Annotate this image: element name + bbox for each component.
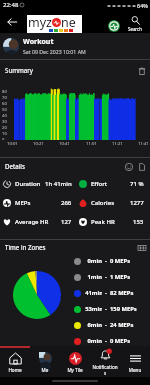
staticText: 64% (137, 2, 148, 9)
staticText: 11:21 (112, 141, 123, 147)
button[interactable]: Delete (135, 64, 148, 77)
staticText: - (105, 257, 107, 265)
staticText: 10:21 (33, 141, 44, 147)
staticText: Home (2, 367, 28, 373)
staticText: 153 (133, 218, 144, 226)
button[interactable]: My Tile (60, 348, 90, 377)
button[interactable]: Menu (120, 348, 150, 377)
button[interactable]: Back (0, 10, 23, 33)
staticText: myz (28, 14, 52, 31)
staticText: 11:01 (86, 141, 97, 147)
button[interactable]: How did you feel (122, 160, 135, 173)
button[interactable]: Search (124, 16, 146, 32)
staticText: Search (128, 26, 142, 32)
staticText: My Tile (62, 367, 88, 373)
button[interactable]: Notifications (90, 348, 120, 377)
staticText: ne (61, 14, 76, 31)
button[interactable]: Export (135, 160, 148, 173)
staticText: 80 (2, 89, 7, 95)
staticText: Peak HR (91, 218, 131, 226)
staticText: 53min (85, 305, 102, 313)
staticText: 10:41 (59, 141, 70, 147)
staticText: 40 (2, 113, 7, 119)
staticText: Sat 09 Dec 2023 10:01 AM (23, 48, 86, 55)
staticText: 22:48 (3, 1, 19, 9)
staticText: 6min (85, 321, 102, 329)
staticText: - (105, 273, 107, 281)
staticText: 71 % (130, 180, 144, 188)
staticText: 0 MEPs (110, 337, 131, 345)
staticText: Duration (15, 180, 43, 188)
button[interactable]: Change chart (135, 241, 148, 254)
staticText: Notifications (92, 364, 118, 376)
staticText: 11:41 (138, 141, 149, 147)
staticText: 266 (61, 199, 72, 207)
staticText: Menu (122, 367, 148, 373)
staticText: 30 (2, 119, 7, 125)
staticText: Calories (91, 199, 128, 207)
staticText: Summary (5, 66, 33, 74)
staticText: 1277 (130, 199, 144, 207)
button[interactable]: Calories (75, 193, 150, 212)
button[interactable]: Peak HR (75, 212, 150, 231)
staticText: - (105, 305, 107, 313)
button[interactable]: Average HR (0, 212, 75, 231)
staticText: 10:01 (7, 141, 18, 147)
staticText: 0 MEPs (110, 257, 131, 265)
staticText: Details (5, 162, 25, 170)
staticText: Average HR (15, 218, 59, 226)
staticText: Time in Zones (5, 243, 46, 251)
staticText: 82 MEPs (110, 289, 134, 297)
staticText: MEPs (15, 199, 59, 207)
staticText: 0min (85, 257, 102, 265)
staticText: 24 MEPs (110, 321, 134, 329)
staticText: 70 (2, 95, 7, 101)
staticText: 159 MEPs (110, 305, 137, 313)
button[interactable]: Home (0, 348, 30, 377)
staticText: - (105, 289, 107, 297)
staticText: - (105, 337, 107, 345)
staticText: 41min (85, 289, 102, 297)
staticText: Me (32, 367, 58, 373)
button[interactable]: Effort (75, 174, 150, 193)
staticText: 60 (2, 101, 7, 107)
staticText: 0min (85, 337, 102, 345)
button[interactable]: Me (30, 348, 60, 377)
staticText: 1h 41min (45, 180, 72, 188)
staticText: Workout (23, 37, 54, 47)
staticText: - (105, 321, 107, 329)
staticText: 10 (2, 131, 7, 137)
button[interactable]: Start workout (108, 20, 120, 32)
staticText: 20 (2, 125, 7, 131)
staticText: 0 (2, 137, 5, 140)
staticText: 1min (85, 273, 102, 281)
staticText: 127 (61, 218, 72, 226)
staticText: 50 (2, 107, 7, 113)
staticText: 1 MEPs (110, 273, 131, 281)
staticText: Effort (91, 180, 128, 188)
button[interactable]: Duration (0, 174, 75, 193)
button[interactable]: MEPs (0, 193, 75, 212)
